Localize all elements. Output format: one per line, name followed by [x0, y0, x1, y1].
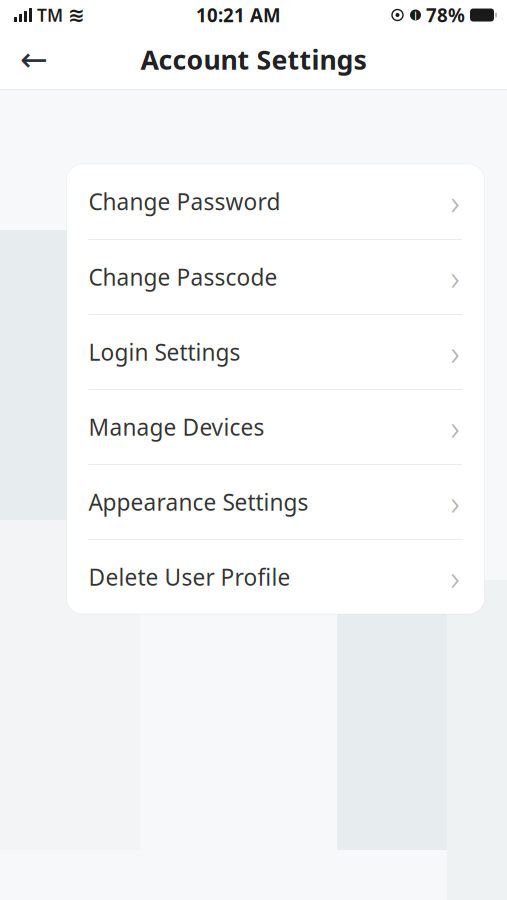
button[interactable]: Appearance Settings	[66, 465, 484, 539]
staticText: Change Password	[88, 186, 280, 216]
staticText: ›	[450, 178, 459, 224]
staticText: |	[413, 9, 418, 21]
staticText: Appearance Settings	[88, 487, 308, 517]
staticText: ›	[450, 479, 459, 525]
button[interactable]: Login Settings	[66, 315, 484, 389]
button[interactable]: Manage Devices	[66, 390, 484, 464]
staticText: TM	[37, 3, 63, 26]
staticText: ›	[450, 329, 459, 375]
staticText: Account Settings	[140, 42, 366, 77]
staticText: Delete User Profile	[88, 562, 290, 592]
staticText: 10:21 AM	[196, 3, 281, 27]
staticText: ›	[450, 404, 459, 450]
staticText: Login Settings	[88, 337, 240, 367]
button[interactable]: Change Passcode	[66, 240, 484, 314]
button[interactable]: Back	[9, 34, 59, 84]
button[interactable]: Change Password	[66, 164, 484, 239]
staticText: Manage Devices	[88, 412, 264, 442]
staticText: 78%	[426, 3, 465, 27]
staticText: ←	[20, 41, 48, 78]
staticText: ›	[450, 554, 459, 600]
staticText: ›	[450, 254, 459, 300]
button[interactable]: Delete User Profile	[66, 540, 484, 614]
staticText: ≋	[68, 4, 85, 26]
staticText: Change Passcode	[88, 262, 277, 292]
